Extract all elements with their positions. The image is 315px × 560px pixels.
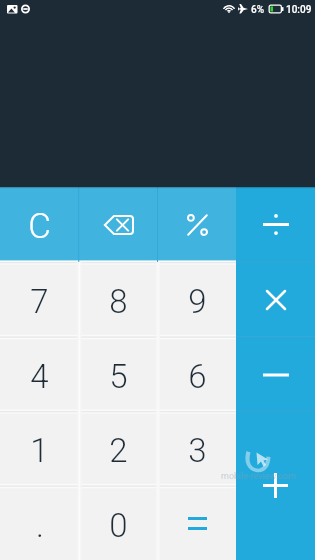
staticText: 5 (109, 357, 128, 396)
staticText: C (28, 206, 51, 247)
button[interactable]: 0 (79, 486, 158, 560)
staticText: 9 (188, 282, 207, 321)
button[interactable]: . (0, 486, 79, 560)
staticText: 0 (109, 506, 128, 545)
staticText: 10:09 (286, 4, 312, 16)
staticText: 4 (30, 357, 49, 396)
staticText: 7 (30, 282, 49, 321)
staticText: 6% (251, 4, 265, 16)
staticText: 8 (109, 282, 128, 321)
button[interactable]: Multiply (236, 262, 315, 337)
staticText: 3 (188, 431, 207, 470)
button[interactable]: 9 (158, 262, 237, 337)
button[interactable]: 2 (79, 411, 158, 486)
button[interactable]: 4 (0, 337, 79, 412)
staticText: . (36, 506, 44, 545)
button[interactable]: Equals (158, 486, 237, 560)
button[interactable]: Percent (158, 187, 237, 262)
button[interactable]: 5 (79, 337, 158, 412)
button[interactable]: 1 (0, 411, 79, 486)
staticText: 1 (30, 431, 49, 470)
button[interactable]: Divide (236, 187, 315, 262)
button[interactable]: 8 (79, 262, 158, 337)
button[interactable]: Clear (0, 187, 79, 262)
button[interactable]: 6 (158, 337, 237, 412)
button[interactable]: 7 (0, 262, 79, 337)
staticText: 2 (109, 431, 128, 470)
button[interactable]: Plus (236, 411, 315, 560)
button[interactable]: Backspace (79, 187, 158, 262)
button[interactable]: Minus (236, 337, 315, 412)
button[interactable]: 3 (158, 411, 237, 486)
staticText: mobile-review.com (221, 471, 297, 482)
staticText: 6 (188, 357, 207, 396)
